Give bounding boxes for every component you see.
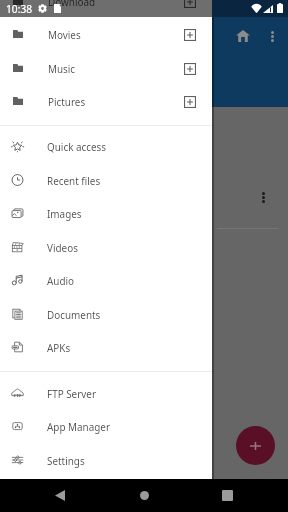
- staticText: Pictures: [48, 95, 86, 108]
- staticText: Documents: [47, 308, 101, 321]
- button[interactable]: Audio: [0, 263, 212, 297]
- staticText: Recent files: [47, 174, 101, 187]
- button[interactable]: Item options: [252, 186, 274, 208]
- button[interactable]: Music: [0, 51, 212, 85]
- button[interactable]: Recent files: [0, 163, 212, 197]
- button[interactable]: Images: [0, 196, 212, 230]
- button[interactable]: Movies: [0, 17, 212, 51]
- button[interactable]: Documents: [0, 297, 212, 331]
- button[interactable]: Videos: [0, 230, 212, 264]
- button[interactable]: Add: [236, 426, 275, 465]
- button[interactable]: Settings: [0, 443, 212, 477]
- button[interactable]: Quick access: [0, 129, 212, 163]
- staticText: APKs: [47, 341, 71, 354]
- button[interactable]: Download: [0, 0, 212, 18]
- button[interactable]: Add bookmark: [178, 57, 201, 80]
- staticText: Quick access: [47, 140, 107, 153]
- staticText: Movies: [48, 28, 81, 41]
- staticText: Videos: [47, 241, 78, 254]
- button[interactable]: Home: [129, 479, 159, 512]
- button[interactable]: Add bookmark: [178, 90, 201, 113]
- staticText: Audio: [47, 274, 75, 287]
- button[interactable]: Back: [45, 479, 75, 512]
- button[interactable]: Add bookmark: [178, 0, 201, 13]
- button[interactable]: FTP Server: [0, 376, 212, 410]
- staticText: 10:38: [6, 2, 33, 16]
- staticText: Settings: [47, 454, 85, 467]
- staticText: FTP Server: [47, 387, 96, 400]
- button[interactable]: Home: [231, 24, 255, 48]
- staticText: App Manager: [47, 420, 110, 433]
- staticText: Music: [48, 62, 76, 75]
- button[interactable]: More options: [261, 25, 283, 47]
- button[interactable]: Add bookmark: [178, 23, 201, 46]
- staticText: Images: [47, 207, 82, 220]
- button[interactable]: App Manager: [0, 409, 212, 443]
- staticText: Download: [48, 0, 96, 8]
- button[interactable]: Pictures: [0, 84, 212, 118]
- button[interactable]: Recent apps: [212, 479, 242, 512]
- button[interactable]: APKs: [0, 330, 212, 364]
